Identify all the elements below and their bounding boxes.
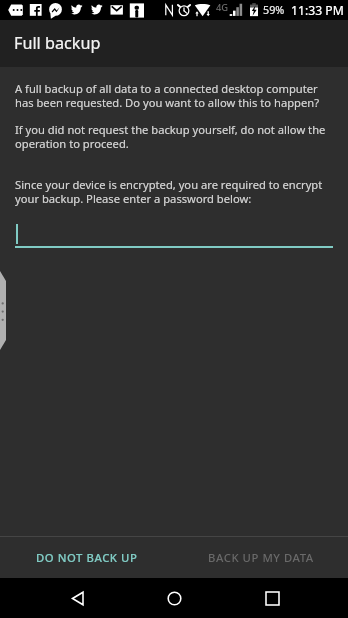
staticText: DO NOT BACK UP bbox=[36, 550, 138, 565]
button[interactable]: DO NOT BACK UP bbox=[0, 537, 174, 578]
staticText: Since your device is encrypted, you are … bbox=[15, 177, 333, 206]
button[interactable]: Open navigation drawer bbox=[0, 271, 6, 350]
staticText: A full backup of all data to a connected… bbox=[15, 81, 333, 110]
button[interactable]: Back bbox=[54, 578, 102, 618]
button[interactable]: BACK UP MY DATA bbox=[174, 537, 348, 578]
button[interactable]: Home bbox=[150, 578, 198, 618]
staticText: Full backup bbox=[14, 32, 101, 54]
button[interactable]: Recent apps bbox=[248, 578, 296, 618]
staticText: 4G bbox=[216, 1, 229, 14]
staticText: If you did not request the backup yourse… bbox=[15, 122, 333, 151]
staticText: 11:33 PM bbox=[291, 2, 344, 19]
staticText: BACK UP MY DATA bbox=[208, 550, 314, 565]
staticText: 59% bbox=[263, 2, 285, 17]
